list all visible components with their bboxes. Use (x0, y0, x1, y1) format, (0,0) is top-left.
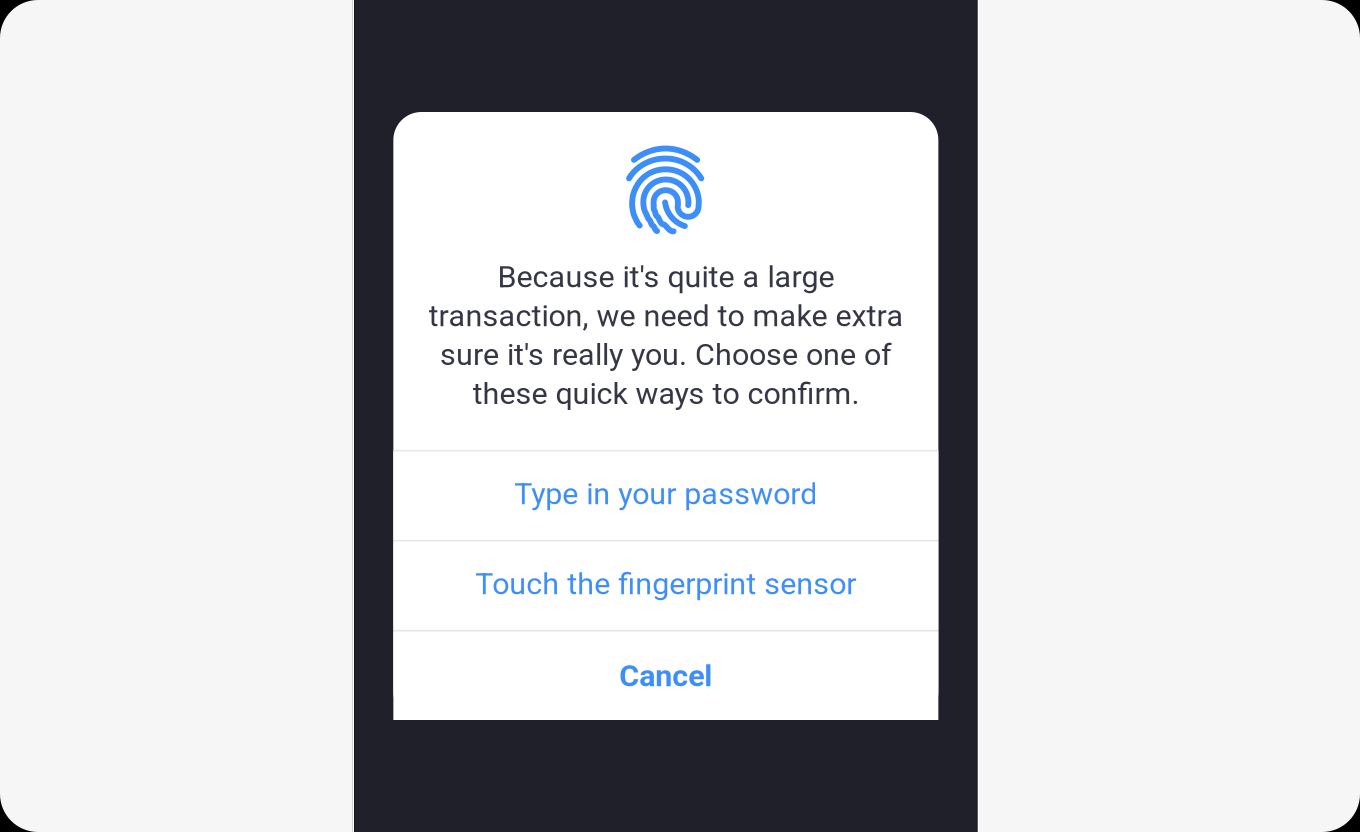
button[interactable]: Cancel (393, 632, 938, 720)
staticText: Cancel (619, 658, 712, 694)
staticText: Because it's quite a large transaction, … (428, 259, 903, 411)
button[interactable]: Type in your password (393, 452, 938, 540)
staticText: Type in your password (514, 476, 817, 512)
button[interactable]: Touch the fingerprint sensor (393, 542, 938, 630)
staticText: Touch the fingerprint sensor (475, 566, 856, 602)
